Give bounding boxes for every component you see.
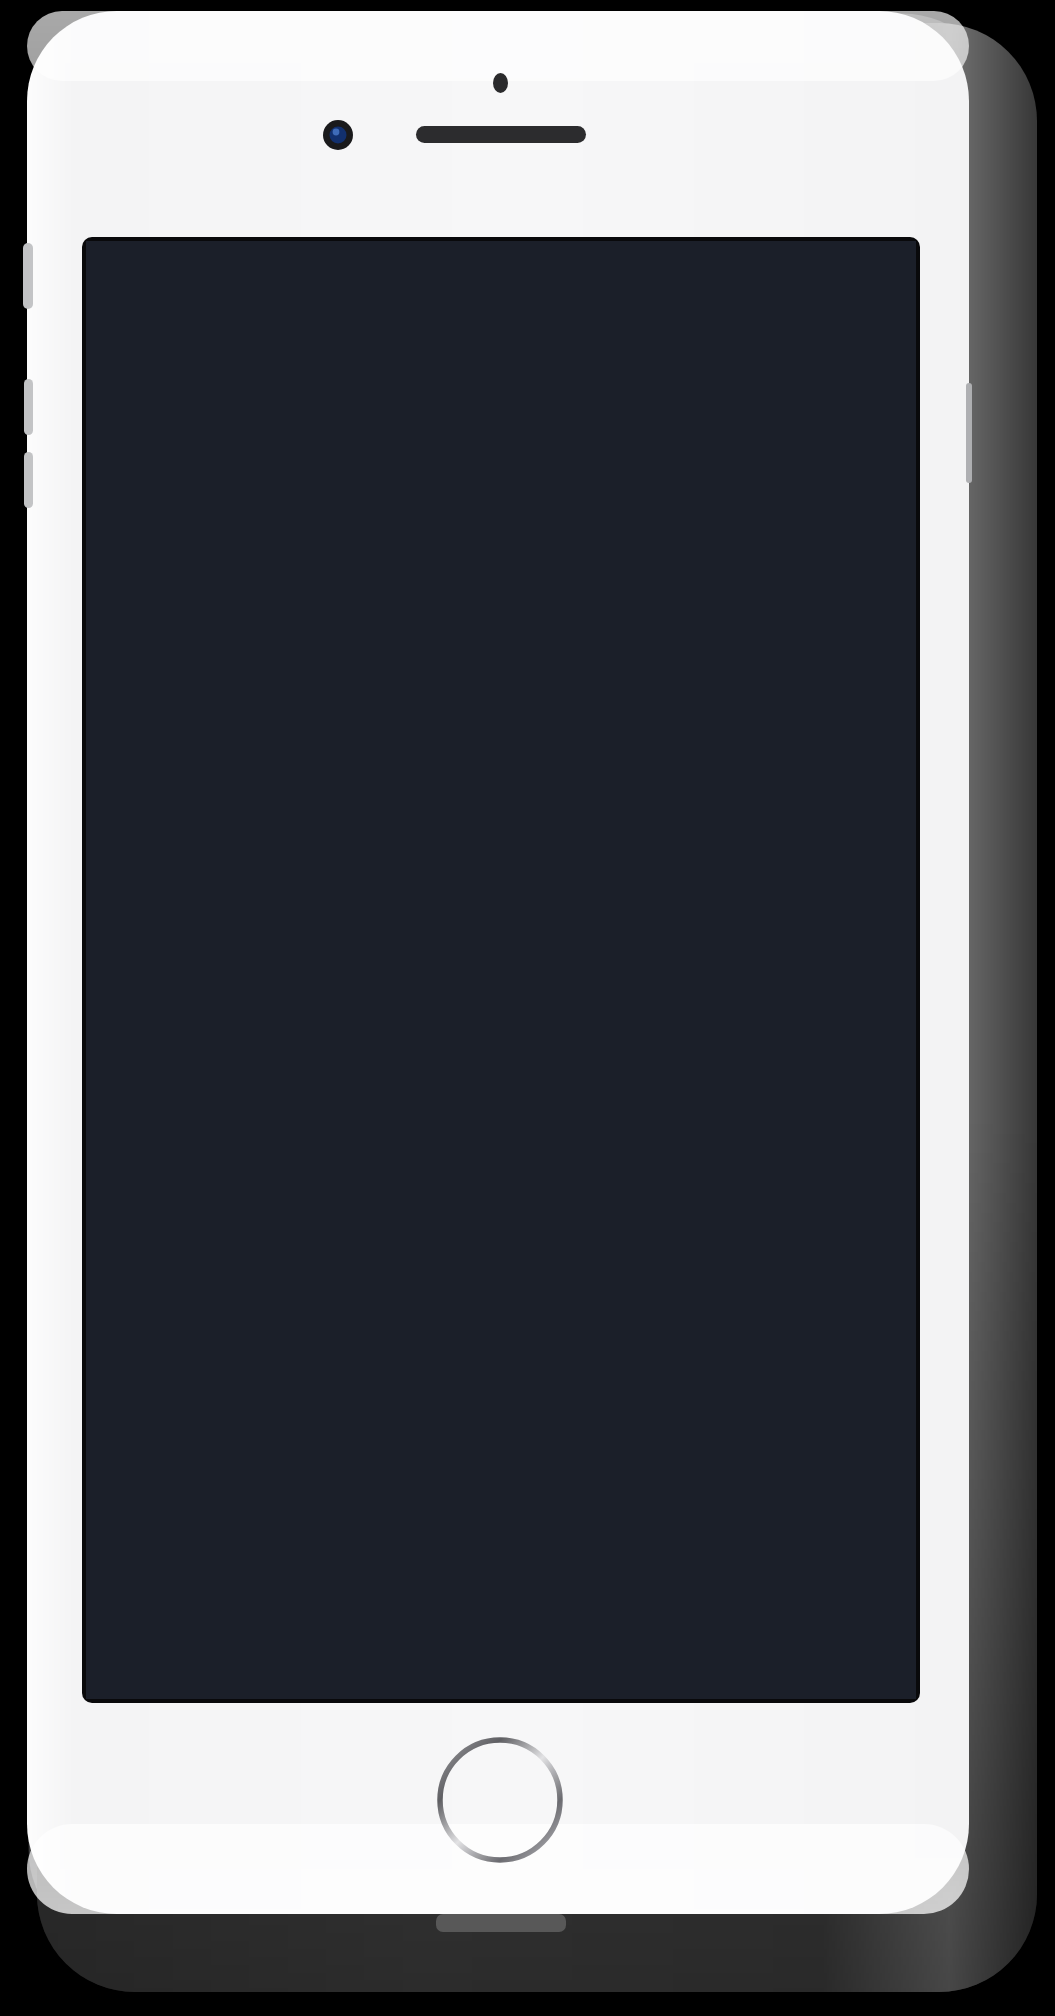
button[interactable]: iPhone mockup, blank dark screen [0, 0, 1055, 2016]
